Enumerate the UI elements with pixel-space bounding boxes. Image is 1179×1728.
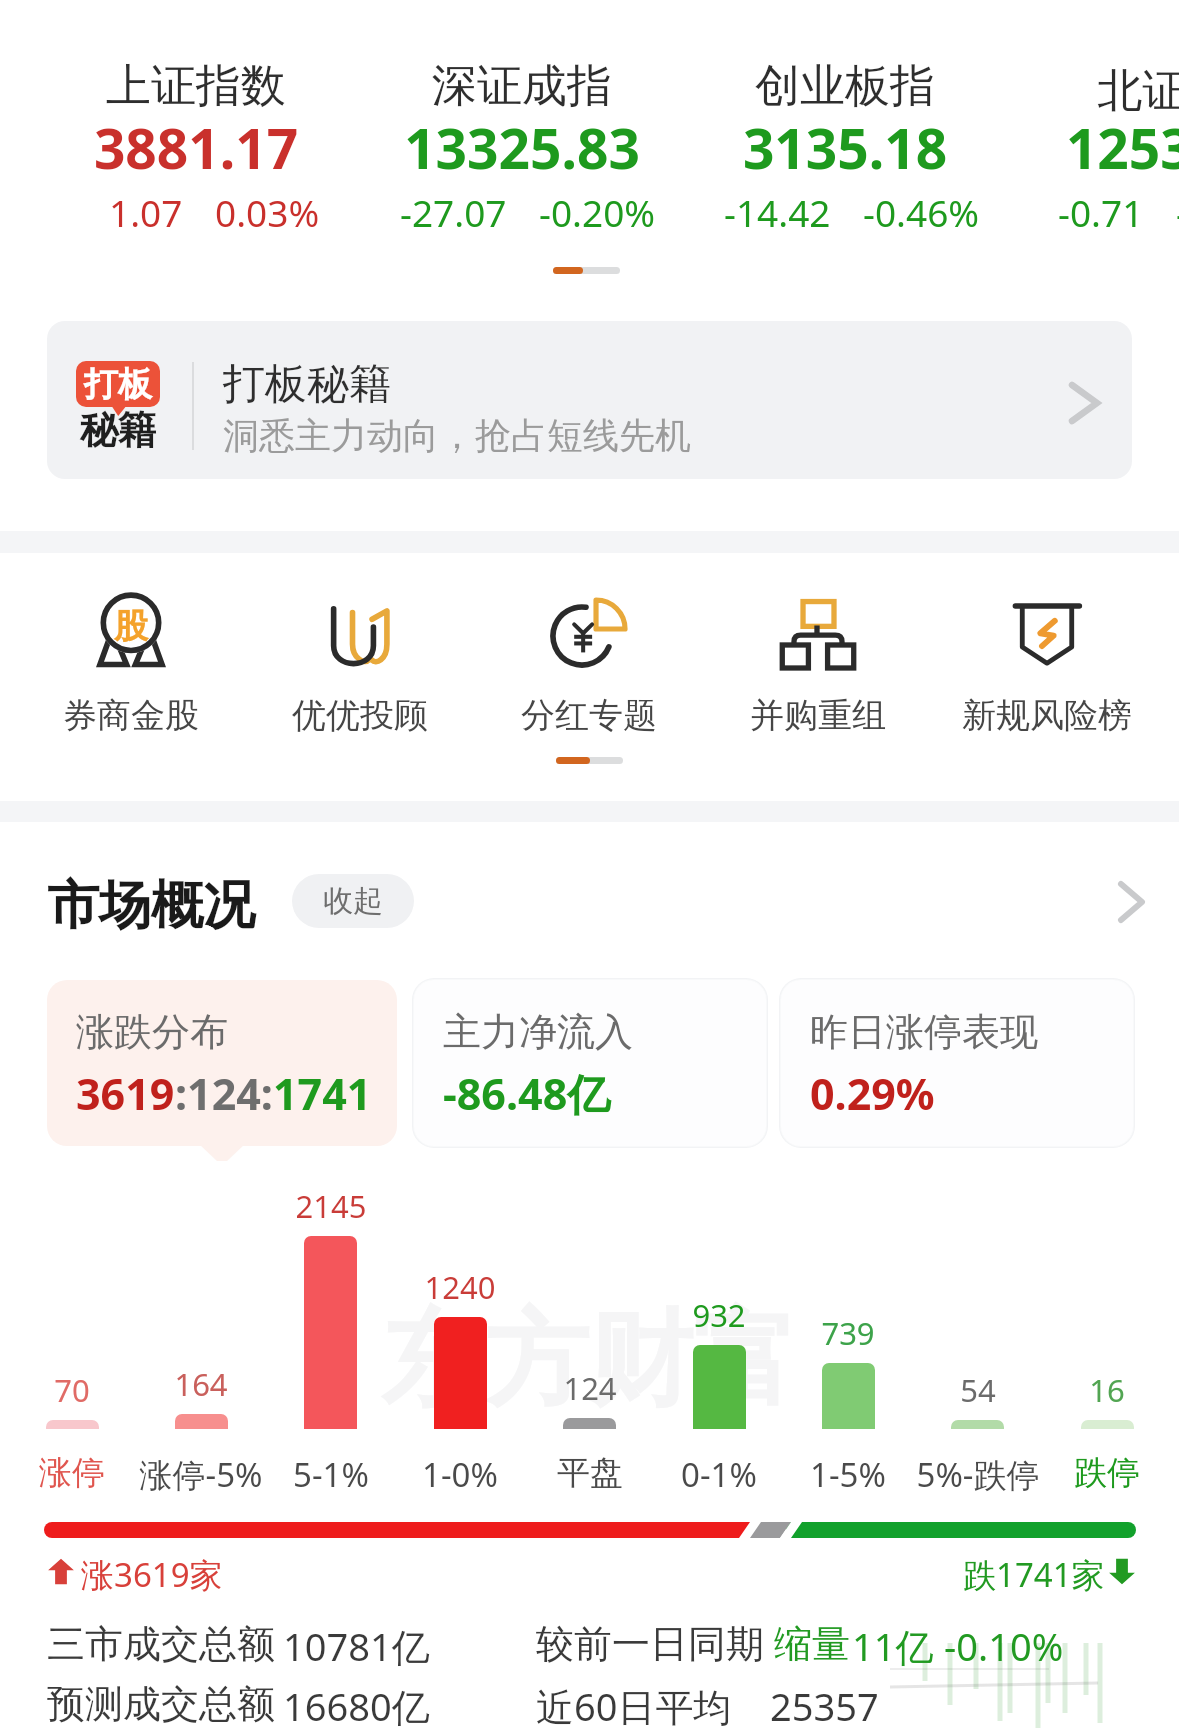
staticText: 164 [131,1363,271,1405]
button[interactable] [40,866,270,930]
button[interactable] [255,585,465,735]
staticText: 16680亿 [283,1680,430,1728]
staticText: 10781亿 [283,1620,430,1672]
staticText: 平盘 [505,1452,675,1494]
staticText: 深证成指 [322,58,722,115]
staticText: 70 [2,1369,142,1411]
staticText: 股 [92,605,170,648]
staticText: 1-5% [763,1452,933,1497]
staticText: 1-0% [375,1452,545,1497]
staticText: 较前一日同期 [536,1620,764,1668]
button[interactable] [942,585,1152,735]
staticText: 秘籍 [78,406,158,454]
staticText: 上证指数 [0,58,396,115]
staticText: 25357 [770,1680,879,1728]
staticText: 新规风险榜 [937,694,1157,737]
staticText: 0.29% [810,1064,935,1123]
button[interactable] [685,50,1005,240]
staticText: 主力净流入 [443,1008,633,1056]
staticText: 跌1741家 [963,1552,1105,1597]
staticText: 1253.99 [968,110,1179,185]
staticText: -0.71 [1058,187,1144,237]
staticText: 涨3619家 [81,1552,223,1597]
staticText: 涨跌分布 [76,1008,228,1056]
button[interactable] [713,585,923,735]
staticText: 券商金股 [21,694,241,737]
other: 查看打板秘籍 [1068,382,1102,424]
staticText: 分红专题 [479,694,699,737]
staticText: 昨日涨停表现 [810,1008,1038,1056]
staticText: -0.46% [863,187,980,237]
staticText: 1.07 [109,187,183,237]
staticText: 创业板指 [645,58,1045,115]
staticText: 1240 [390,1266,530,1308]
staticText: 洞悉主力动向，抢占短线先机 [223,413,691,458]
button[interactable] [36,50,356,240]
button[interactable] [47,980,397,1146]
staticText: -0.06% [1176,187,1179,237]
staticText: 5-1% [246,1452,416,1497]
staticText: 并购重组 [708,694,928,737]
staticText: 市场概况 [47,873,255,939]
staticText: 3881.17 [0,110,396,185]
button[interactable] [781,980,1133,1146]
staticText: 北证50 [968,58,1179,119]
staticText: :124: [175,1064,273,1123]
staticText: 1741 [273,1064,372,1123]
staticText: 近60日平均 [536,1680,732,1728]
staticText: 54 [908,1369,1048,1411]
staticText: -0.10% [944,1620,1064,1672]
staticText: 2145 [261,1185,401,1227]
staticText: 16 [1037,1369,1177,1411]
staticText: 三市成交总额 [47,1620,275,1668]
staticText: 3619 [76,1064,175,1123]
staticText: 涨停 [0,1452,157,1494]
staticText: 东方财富 [381,1295,797,1426]
staticText: 13325.83 [322,110,722,185]
button[interactable] [414,980,766,1146]
staticText: 5%-跌停 [893,1452,1063,1497]
staticText: 932 [649,1294,789,1336]
staticText: 涨停-5% [116,1452,286,1497]
staticText: 收起 [323,882,383,920]
staticText: -86.48亿 [443,1064,611,1123]
staticText: -0.20% [539,187,656,237]
staticText: 打板 [84,363,152,406]
staticText: 优优投顾 [250,694,470,737]
staticText: -14.42 [724,187,831,237]
staticText: 124 [520,1367,660,1409]
staticText: 0.03% [215,187,320,237]
staticText: 预测成交总额 [47,1680,275,1728]
button[interactable] [1008,50,1179,240]
staticText: 3135.18 [645,110,1045,185]
staticText: 0-1% [634,1452,804,1497]
button[interactable]: 更多市场概况 [1118,881,1146,923]
button[interactable] [47,321,1132,479]
staticText: 11亿 [852,1620,934,1672]
button[interactable] [362,50,682,240]
button[interactable]: 收起 [292,874,414,928]
staticText: 缩量 [774,1620,850,1668]
button[interactable] [484,585,694,735]
staticText: 打板秘籍 [223,358,391,411]
staticText: 739 [778,1312,918,1354]
button[interactable] [26,585,236,735]
staticText: -27.07 [400,187,507,237]
staticText: 跌停 [1022,1452,1179,1494]
